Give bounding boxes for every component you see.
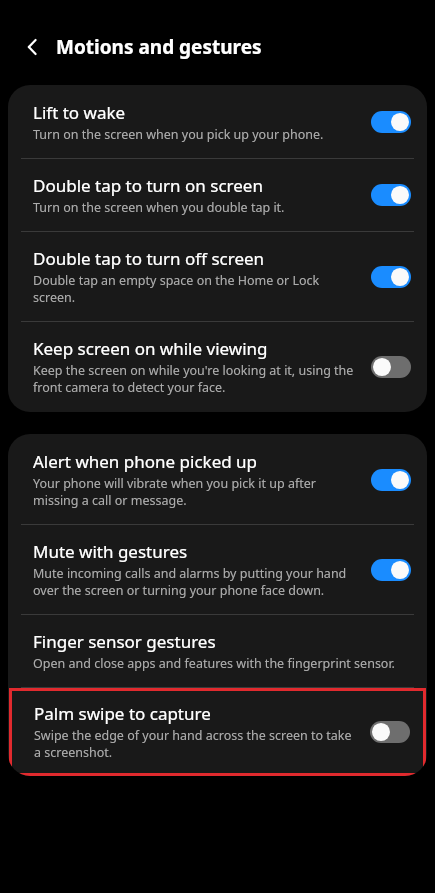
staticText: Finger sensor gestures [33,630,216,653]
staticText: Alert when phone picked up [33,450,258,473]
staticText: Double tap to turn off screen [33,247,265,270]
button[interactable]: Double tap to turn on screen [8,159,427,231]
staticText: Mute incoming calls and alarms by puttin… [33,565,361,599]
staticText: Your phone will vibrate when you pick it… [33,475,361,509]
staticText: Turn on the screen when you pick up your… [33,126,324,143]
staticText: Open and close apps and features with th… [33,655,395,672]
button[interactable]: Keep screen on while viewing [8,322,427,412]
staticText: Swipe the edge of your hand across the s… [34,727,360,761]
staticText: Mute with gestures [33,540,188,563]
staticText: Lift to wake [33,101,126,124]
button[interactable]: Finger sensor gestures [8,615,427,687]
button[interactable]: Lift to wake [8,85,427,158]
button[interactable]: Alert when phone picked up [8,434,427,524]
button[interactable]: Back [16,30,50,64]
staticText: Palm swipe to capture [34,702,211,725]
staticText: Turn on the screen when you double tap i… [33,199,285,216]
button[interactable]: On [371,559,411,581]
staticText: Double tap to turn on screen [33,174,263,197]
staticText: Motions and gestures [56,34,262,60]
button[interactable]: Off [370,721,410,743]
staticText: Double tap an empty space on the Home or… [33,272,361,306]
button[interactable]: Mute with gestures [8,525,427,614]
button[interactable]: On [371,111,411,133]
staticText: Keep screen on while viewing [33,337,268,360]
button[interactable]: Off [371,356,411,378]
staticText: Keep the screen on while you're looking … [33,362,361,396]
button[interactable]: Double tap to turn off screen [8,232,427,321]
button[interactable]: On [371,469,411,491]
button[interactable]: On [371,266,411,288]
button[interactable]: Palm swipe to capture [9,688,426,776]
button[interactable]: On [371,184,411,206]
